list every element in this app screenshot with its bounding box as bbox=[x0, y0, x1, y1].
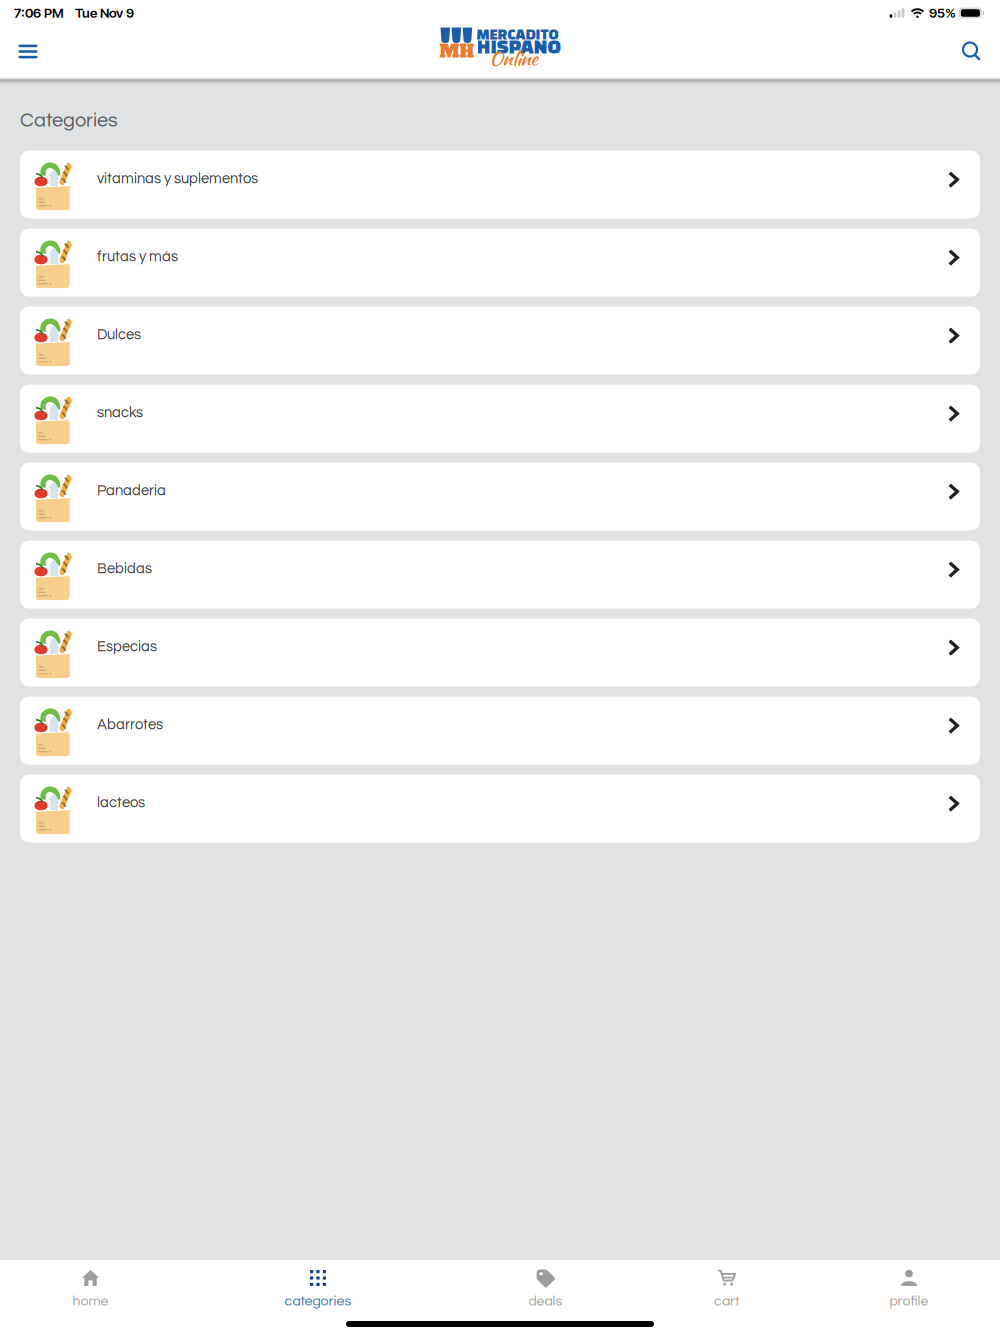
staticText: frutas y màs bbox=[97, 249, 178, 264]
button[interactable]: Search bbox=[944, 26, 1000, 77]
button[interactable]: profile bbox=[818, 1260, 1000, 1334]
staticText: MERCADITO bbox=[476, 25, 558, 42]
button[interactable]: Panaderia bbox=[20, 463, 980, 531]
staticText: profile bbox=[889, 1294, 928, 1308]
staticText: home bbox=[72, 1294, 108, 1308]
staticText: cart bbox=[714, 1294, 740, 1308]
button[interactable]: cart bbox=[636, 1260, 818, 1334]
button[interactable]: deals bbox=[455, 1260, 636, 1334]
staticText: Online bbox=[489, 45, 538, 72]
staticText: Tue Nov 9 bbox=[75, 5, 134, 21]
staticText: lacteos bbox=[97, 795, 145, 810]
staticText: MH bbox=[439, 40, 474, 63]
staticText: snacks bbox=[97, 405, 143, 420]
button[interactable]: Abarrotes bbox=[20, 697, 980, 765]
staticText: vitaminas y suplementos bbox=[97, 171, 258, 186]
button[interactable]: frutas y màs bbox=[20, 229, 980, 297]
staticText: 7:06 PM bbox=[14, 5, 64, 21]
staticText: Panaderia bbox=[97, 483, 166, 498]
staticText: Abarrotes bbox=[97, 717, 163, 732]
staticText: Dulces bbox=[97, 327, 141, 342]
button[interactable]: Menu bbox=[0, 26, 56, 77]
staticText: categories bbox=[284, 1294, 351, 1308]
staticText: Categories bbox=[20, 110, 118, 131]
staticText: 95% bbox=[929, 5, 956, 21]
button[interactable]: Dulces bbox=[20, 307, 980, 375]
button[interactable]: lacteos bbox=[20, 775, 980, 843]
button[interactable]: snacks bbox=[20, 385, 980, 453]
button[interactable]: categories bbox=[181, 1260, 455, 1334]
button[interactable]: home bbox=[0, 1260, 181, 1334]
button[interactable]: Bebidas bbox=[20, 541, 980, 609]
staticText: deals bbox=[528, 1294, 562, 1308]
staticText: Bebidas bbox=[97, 561, 152, 576]
button[interactable]: Especias bbox=[20, 619, 980, 687]
staticText: Especias bbox=[97, 639, 157, 654]
staticText: HISPANO bbox=[476, 35, 560, 57]
button[interactable]: vitaminas y suplementos bbox=[20, 151, 980, 219]
